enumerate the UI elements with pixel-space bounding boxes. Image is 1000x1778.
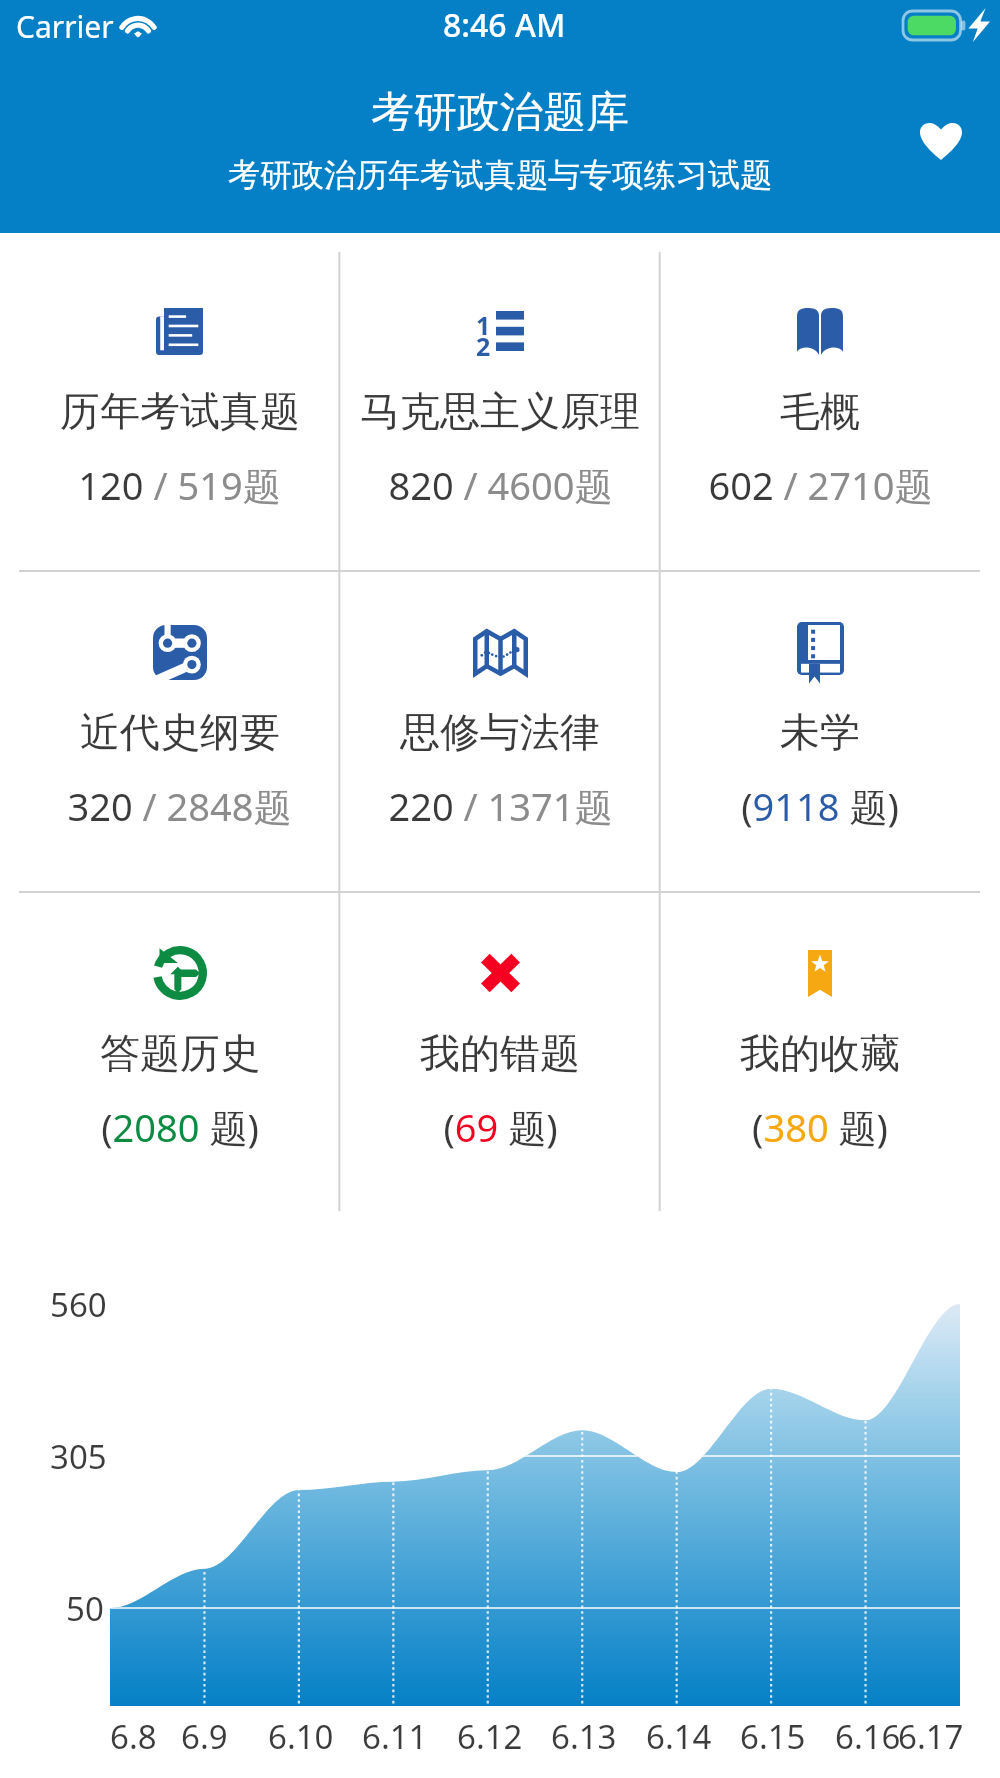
staticText: 考研政治题库 xyxy=(371,86,629,131)
staticText: 1 xyxy=(476,308,491,342)
staticText: 马克思主义原理 xyxy=(360,386,640,436)
button[interactable]: 历年考试真题 xyxy=(19,250,340,571)
button[interactable]: 答题历史 xyxy=(19,892,340,1213)
button[interactable]: 未学 xyxy=(660,571,980,892)
button[interactable]: 1 xyxy=(340,250,660,571)
staticText: 6.12 xyxy=(457,1714,523,1759)
staticText: 560 xyxy=(50,1282,107,1327)
staticText: 未学 xyxy=(780,707,860,757)
staticText: 50 xyxy=(66,1586,104,1631)
staticText: 答题历史 xyxy=(100,1028,260,1078)
button[interactable]: 毛概 xyxy=(660,250,980,571)
staticText: 602 / 2710题 xyxy=(708,459,933,511)
staticText: 6.16 xyxy=(835,1714,901,1759)
staticText: 6.9 xyxy=(181,1714,228,1759)
staticText: 6.11 xyxy=(362,1714,428,1759)
staticText: 思修与法律 xyxy=(400,707,600,757)
staticText: 我的收藏 xyxy=(740,1028,900,1078)
staticText: 6.10 xyxy=(268,1714,334,1759)
button[interactable]: 我的收藏 xyxy=(660,892,980,1213)
staticText: 305 xyxy=(50,1434,107,1479)
button[interactable]: Favorite xyxy=(901,100,981,180)
staticText: 220 / 1371题 xyxy=(388,780,613,832)
staticText: 2 xyxy=(476,329,491,363)
staticText: 6.14 xyxy=(646,1714,712,1759)
staticText: (2080 题) xyxy=(101,1101,259,1153)
button[interactable]: 思修与法律 xyxy=(340,571,660,892)
staticText: (380 题) xyxy=(752,1101,888,1153)
button[interactable]: 近代史纲要 xyxy=(19,571,340,892)
staticText: 120 / 519题 xyxy=(78,459,281,511)
staticText: Carrier xyxy=(16,6,114,47)
staticText: 6.8 xyxy=(110,1714,157,1759)
staticText: 我的错题 xyxy=(420,1028,580,1078)
staticText: 6.15 xyxy=(740,1714,806,1759)
staticText: 320 / 2848题 xyxy=(67,780,292,832)
button[interactable]: 我的错题 xyxy=(340,892,660,1213)
staticText: 8:46 AM xyxy=(443,3,566,47)
staticText: (9118 题) xyxy=(741,780,899,832)
staticText: 6.13 xyxy=(551,1714,617,1759)
staticText: (69 题) xyxy=(443,1101,558,1153)
staticText: 考研政治历年考试真题与专项练习试题 xyxy=(228,155,772,195)
staticText: 6.17 xyxy=(898,1714,964,1759)
staticText: 近代史纲要 xyxy=(80,707,280,757)
staticText: 毛概 xyxy=(780,386,860,436)
staticText: 820 / 4600题 xyxy=(388,459,613,511)
staticText: 历年考试真题 xyxy=(60,386,300,436)
